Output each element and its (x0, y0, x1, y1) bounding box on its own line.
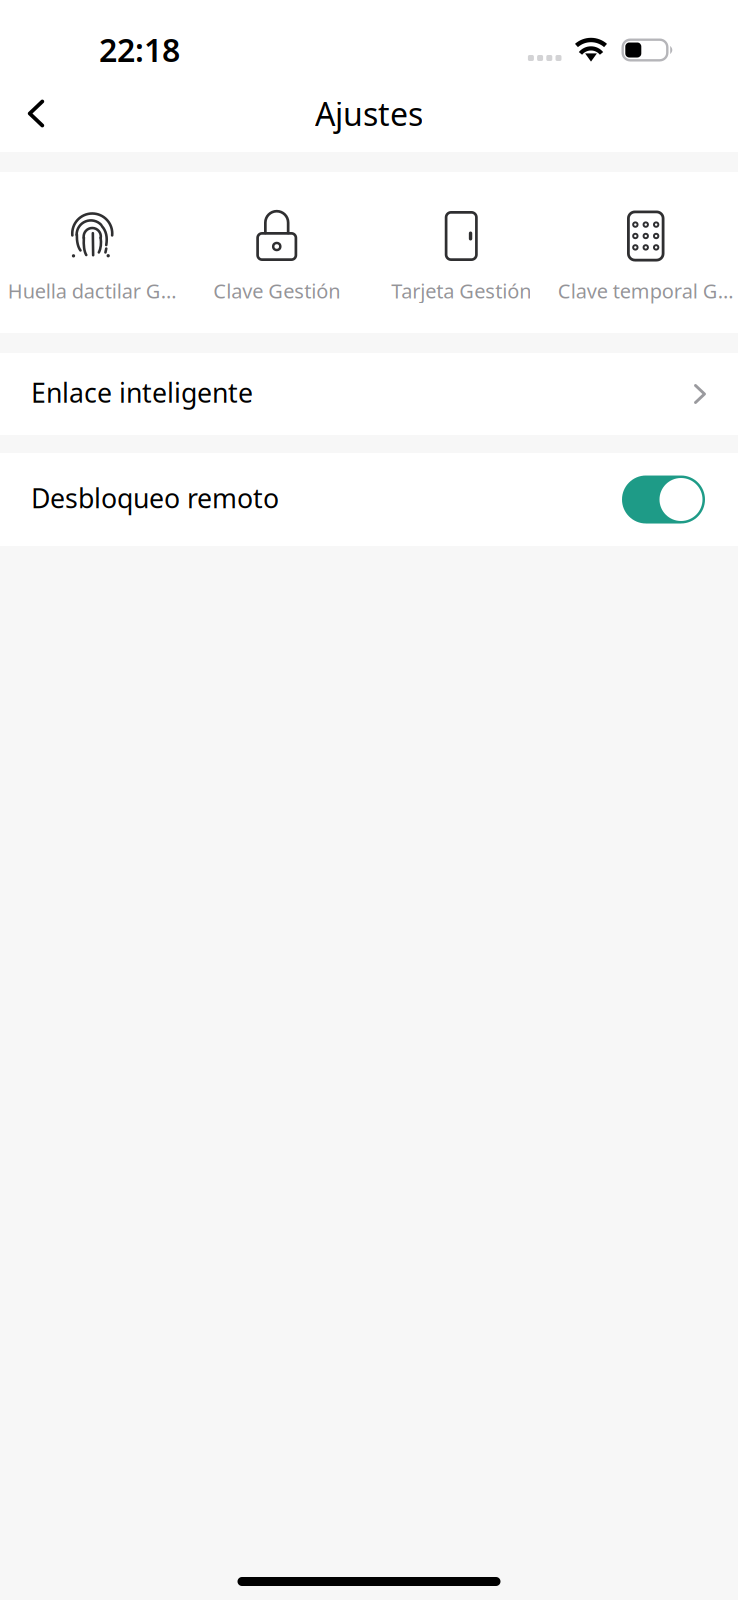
button[interactable]: Atrás (7, 84, 65, 159)
staticText: Clave Gestión (213, 277, 340, 304)
button[interactable]: Clave Gestión (184, 172, 369, 333)
button[interactable]: Desbloqueo remoto (0, 453, 738, 546)
button[interactable]: Huella dactilar G… (0, 172, 184, 333)
staticText: Desbloqueo remoto (31, 480, 279, 516)
staticText: Clave temporal G… (558, 277, 734, 304)
staticText: Ajustes (315, 92, 423, 135)
staticText: Huella dactilar G… (8, 277, 177, 304)
staticText: Tarjeta Gestión (391, 277, 531, 304)
button[interactable]: Enlace inteligente (0, 353, 738, 435)
staticText: Enlace inteligente (31, 375, 253, 410)
staticText: 22:18 (99, 28, 180, 71)
button[interactable]: Tarjeta Gestión (369, 172, 553, 333)
button[interactable]: Clave temporal G… (553, 172, 738, 333)
